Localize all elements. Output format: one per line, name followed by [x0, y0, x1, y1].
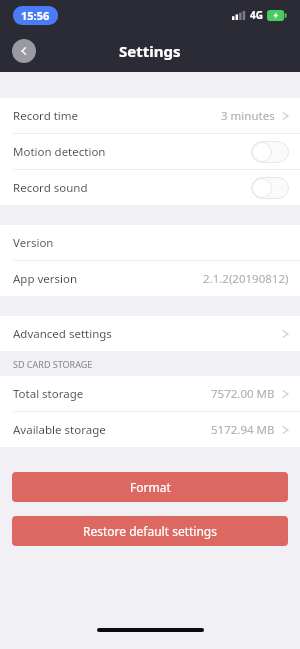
button[interactable]: Back	[12, 39, 36, 63]
button[interactable]: Version	[0, 225, 300, 260]
staticText: 3 minutes	[221, 108, 275, 124]
staticText: Settings	[119, 41, 181, 61]
button[interactable]: Available storage	[0, 412, 300, 447]
button[interactable]: Motion detection	[0, 134, 300, 169]
button[interactable]: Total storage	[0, 376, 300, 411]
staticText: 5172.94 MB	[211, 422, 275, 438]
button[interactable]: Restore default settings	[12, 516, 288, 546]
button[interactable]: Format	[12, 472, 288, 502]
staticText: Restore default settings	[83, 523, 217, 539]
staticText: Advanced settings	[13, 326, 112, 342]
other: Off	[251, 177, 289, 199]
staticText: 4G	[250, 8, 263, 22]
staticText: 15:56	[21, 8, 50, 23]
staticText: SD CARD STORAGE	[13, 358, 93, 370]
staticText: 7572.00 MB	[211, 386, 275, 402]
staticText: Record sound	[13, 180, 88, 196]
staticText: App version	[13, 271, 78, 287]
staticText: Record time	[13, 108, 79, 124]
staticText: Version	[13, 235, 54, 251]
button[interactable]: Record time	[0, 98, 300, 133]
other: Off	[251, 141, 289, 163]
staticText: Format	[130, 479, 171, 495]
button[interactable]: Record sound	[0, 170, 300, 205]
staticText: Available storage	[13, 422, 106, 438]
staticText: 2.1.2(20190812)	[203, 271, 289, 287]
staticText: Motion detection	[13, 144, 106, 160]
button[interactable]: App version	[0, 261, 300, 296]
staticText: Total storage	[13, 386, 84, 402]
button[interactable]: Advanced settings	[0, 316, 300, 351]
